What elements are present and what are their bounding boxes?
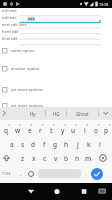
button[interactable]: t (46, 123, 57, 137)
button[interactable] (19, 28, 101, 34)
staticText: u (71, 126, 76, 135)
button[interactable] (19, 17, 101, 23)
button[interactable] (95, 185, 109, 198)
button[interactable]: yet more options (2, 101, 62, 110)
button[interactable]: c (39, 151, 50, 165)
button[interactable]: q (0, 123, 12, 137)
button[interactable]: r (35, 123, 46, 137)
button[interactable] (19, 39, 101, 45)
staticText: o (94, 126, 98, 135)
staticText: k (87, 140, 91, 149)
button[interactable] (50, 185, 64, 198)
staticText: s (21, 140, 25, 149)
button[interactable] (19, 10, 101, 16)
staticText: z (21, 154, 25, 163)
staticText: j (77, 140, 79, 149)
staticText: x (32, 154, 36, 163)
staticText: edit one (2, 8, 17, 13)
button[interactable]: g (50, 137, 61, 151)
button[interactable] (19, 34, 101, 40)
button[interactable]: yet more options (2, 85, 62, 94)
button[interactable]: e (24, 123, 35, 137)
staticText: Ghost (76, 111, 89, 117)
button[interactable]: d (28, 137, 39, 151)
staticText: t (50, 126, 53, 135)
staticText: e (28, 126, 32, 135)
staticText: next edit here (2, 22, 27, 27)
staticText: Hy (30, 111, 36, 117)
button[interactable]: Ghost (68, 107, 97, 120)
staticText: p (104, 126, 109, 135)
button[interactable]: u (68, 123, 79, 137)
button[interactable] (96, 151, 111, 165)
staticText: 19:38 (99, 2, 109, 7)
button[interactable]: j (72, 137, 83, 151)
button[interactable] (28, 171, 34, 177)
staticText: d (31, 140, 36, 149)
staticText: another option (11, 66, 40, 71)
staticText: r (39, 126, 42, 135)
button[interactable]: h (61, 137, 72, 151)
staticText: n (75, 154, 80, 163)
button[interactable]: another option (2, 64, 62, 73)
staticText: w (15, 126, 21, 135)
staticText: forth edit (2, 29, 19, 34)
button[interactable]: z (17, 151, 28, 165)
button[interactable]: a (6, 137, 17, 151)
staticText: l (99, 140, 101, 149)
button[interactable]: y (57, 123, 68, 137)
staticText: g (53, 140, 58, 149)
staticText: b (64, 154, 69, 163)
button[interactable]: w (12, 123, 24, 137)
button[interactable]: k (83, 137, 94, 151)
staticText: h (64, 140, 69, 149)
staticText: HG (53, 111, 60, 117)
button[interactable]: ?123 (2, 171, 11, 176)
button[interactable] (91, 168, 103, 180)
button[interactable] (0, 151, 13, 165)
button[interactable]: . (85, 169, 87, 177)
button[interactable]: f (39, 137, 50, 151)
button[interactable] (19, 22, 101, 28)
staticText: edit two (2, 15, 17, 20)
button[interactable]: o (90, 123, 101, 137)
staticText: a (10, 140, 14, 149)
staticText: c (43, 154, 47, 163)
button[interactable]: i (79, 123, 90, 137)
button[interactable]: x (28, 151, 39, 165)
button[interactable] (24, 185, 38, 198)
button[interactable]: n (72, 151, 83, 165)
button[interactable]: m (83, 151, 94, 165)
button[interactable]: l (94, 137, 105, 151)
staticText: yet more options (11, 87, 43, 92)
staticText: v (54, 154, 58, 163)
staticText: m (85, 154, 92, 163)
staticText: some option (11, 48, 35, 53)
staticText: yet more options (11, 103, 43, 108)
staticText: y (61, 126, 65, 135)
button[interactable]: v (50, 151, 61, 165)
button[interactable]: b (61, 151, 72, 165)
staticText: f (43, 140, 46, 149)
button[interactable]: some option (2, 46, 62, 55)
button[interactable] (77, 185, 91, 198)
button[interactable]: , (20, 170, 22, 178)
staticText: final edit (2, 36, 18, 41)
staticText: i (84, 126, 86, 135)
staticText: q (4, 126, 9, 135)
button[interactable]: Hy (22, 107, 44, 120)
button[interactable]: s (17, 137, 28, 151)
button[interactable]: p (101, 123, 112, 137)
button[interactable]: HG (46, 107, 66, 120)
